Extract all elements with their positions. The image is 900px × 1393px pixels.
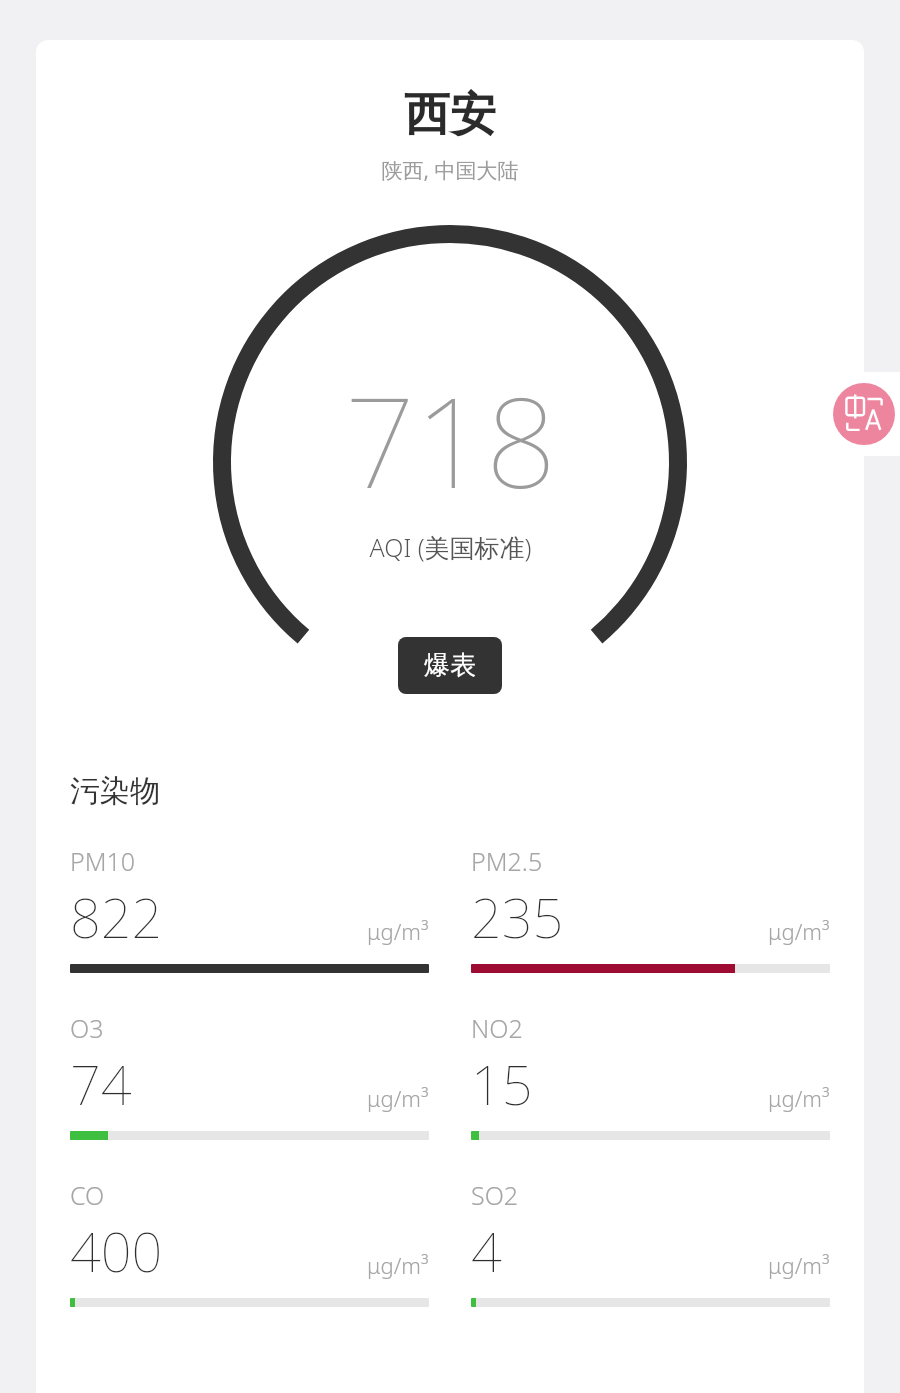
staticText: PM10 (70, 844, 136, 878)
staticText: O3 (70, 1011, 104, 1045)
button[interactable]: O3 (70, 1011, 429, 1140)
staticText: μg/m³ (768, 1250, 830, 1280)
button[interactable]: CO (70, 1178, 429, 1307)
staticText: μg/m³ (367, 1250, 429, 1280)
staticText: μg/m³ (367, 1083, 429, 1113)
button[interactable]: PM2.5 (471, 844, 830, 973)
button[interactable]: PM10 (70, 844, 429, 973)
staticText: 400 (70, 1214, 163, 1288)
staticText: 爆表 (424, 649, 476, 682)
staticText: 235 (471, 880, 564, 954)
staticText: 4 (471, 1214, 502, 1288)
staticText: 15 (471, 1047, 533, 1121)
staticText: 74 (70, 1047, 132, 1121)
button[interactable]: Translate (828, 372, 900, 456)
staticText: PM2.5 (471, 844, 543, 878)
button[interactable]: SO2 (471, 1178, 830, 1307)
staticText: AQI (美国标准) (369, 530, 532, 564)
staticText: 陕西, 中国大陆 (381, 156, 519, 185)
staticText: 污染物 (70, 772, 160, 810)
staticText: 西安 (404, 86, 496, 144)
staticText: μg/m³ (768, 1083, 830, 1113)
staticText: 822 (70, 880, 163, 954)
staticText: μg/m³ (367, 916, 429, 946)
staticText: CO (70, 1178, 105, 1212)
staticText: NO2 (471, 1011, 523, 1045)
button[interactable]: NO2 (471, 1011, 830, 1140)
button[interactable]: 爆表 (398, 637, 502, 694)
staticText: μg/m³ (768, 916, 830, 946)
staticText: SO2 (471, 1178, 519, 1212)
staticText: 718 (344, 355, 557, 524)
